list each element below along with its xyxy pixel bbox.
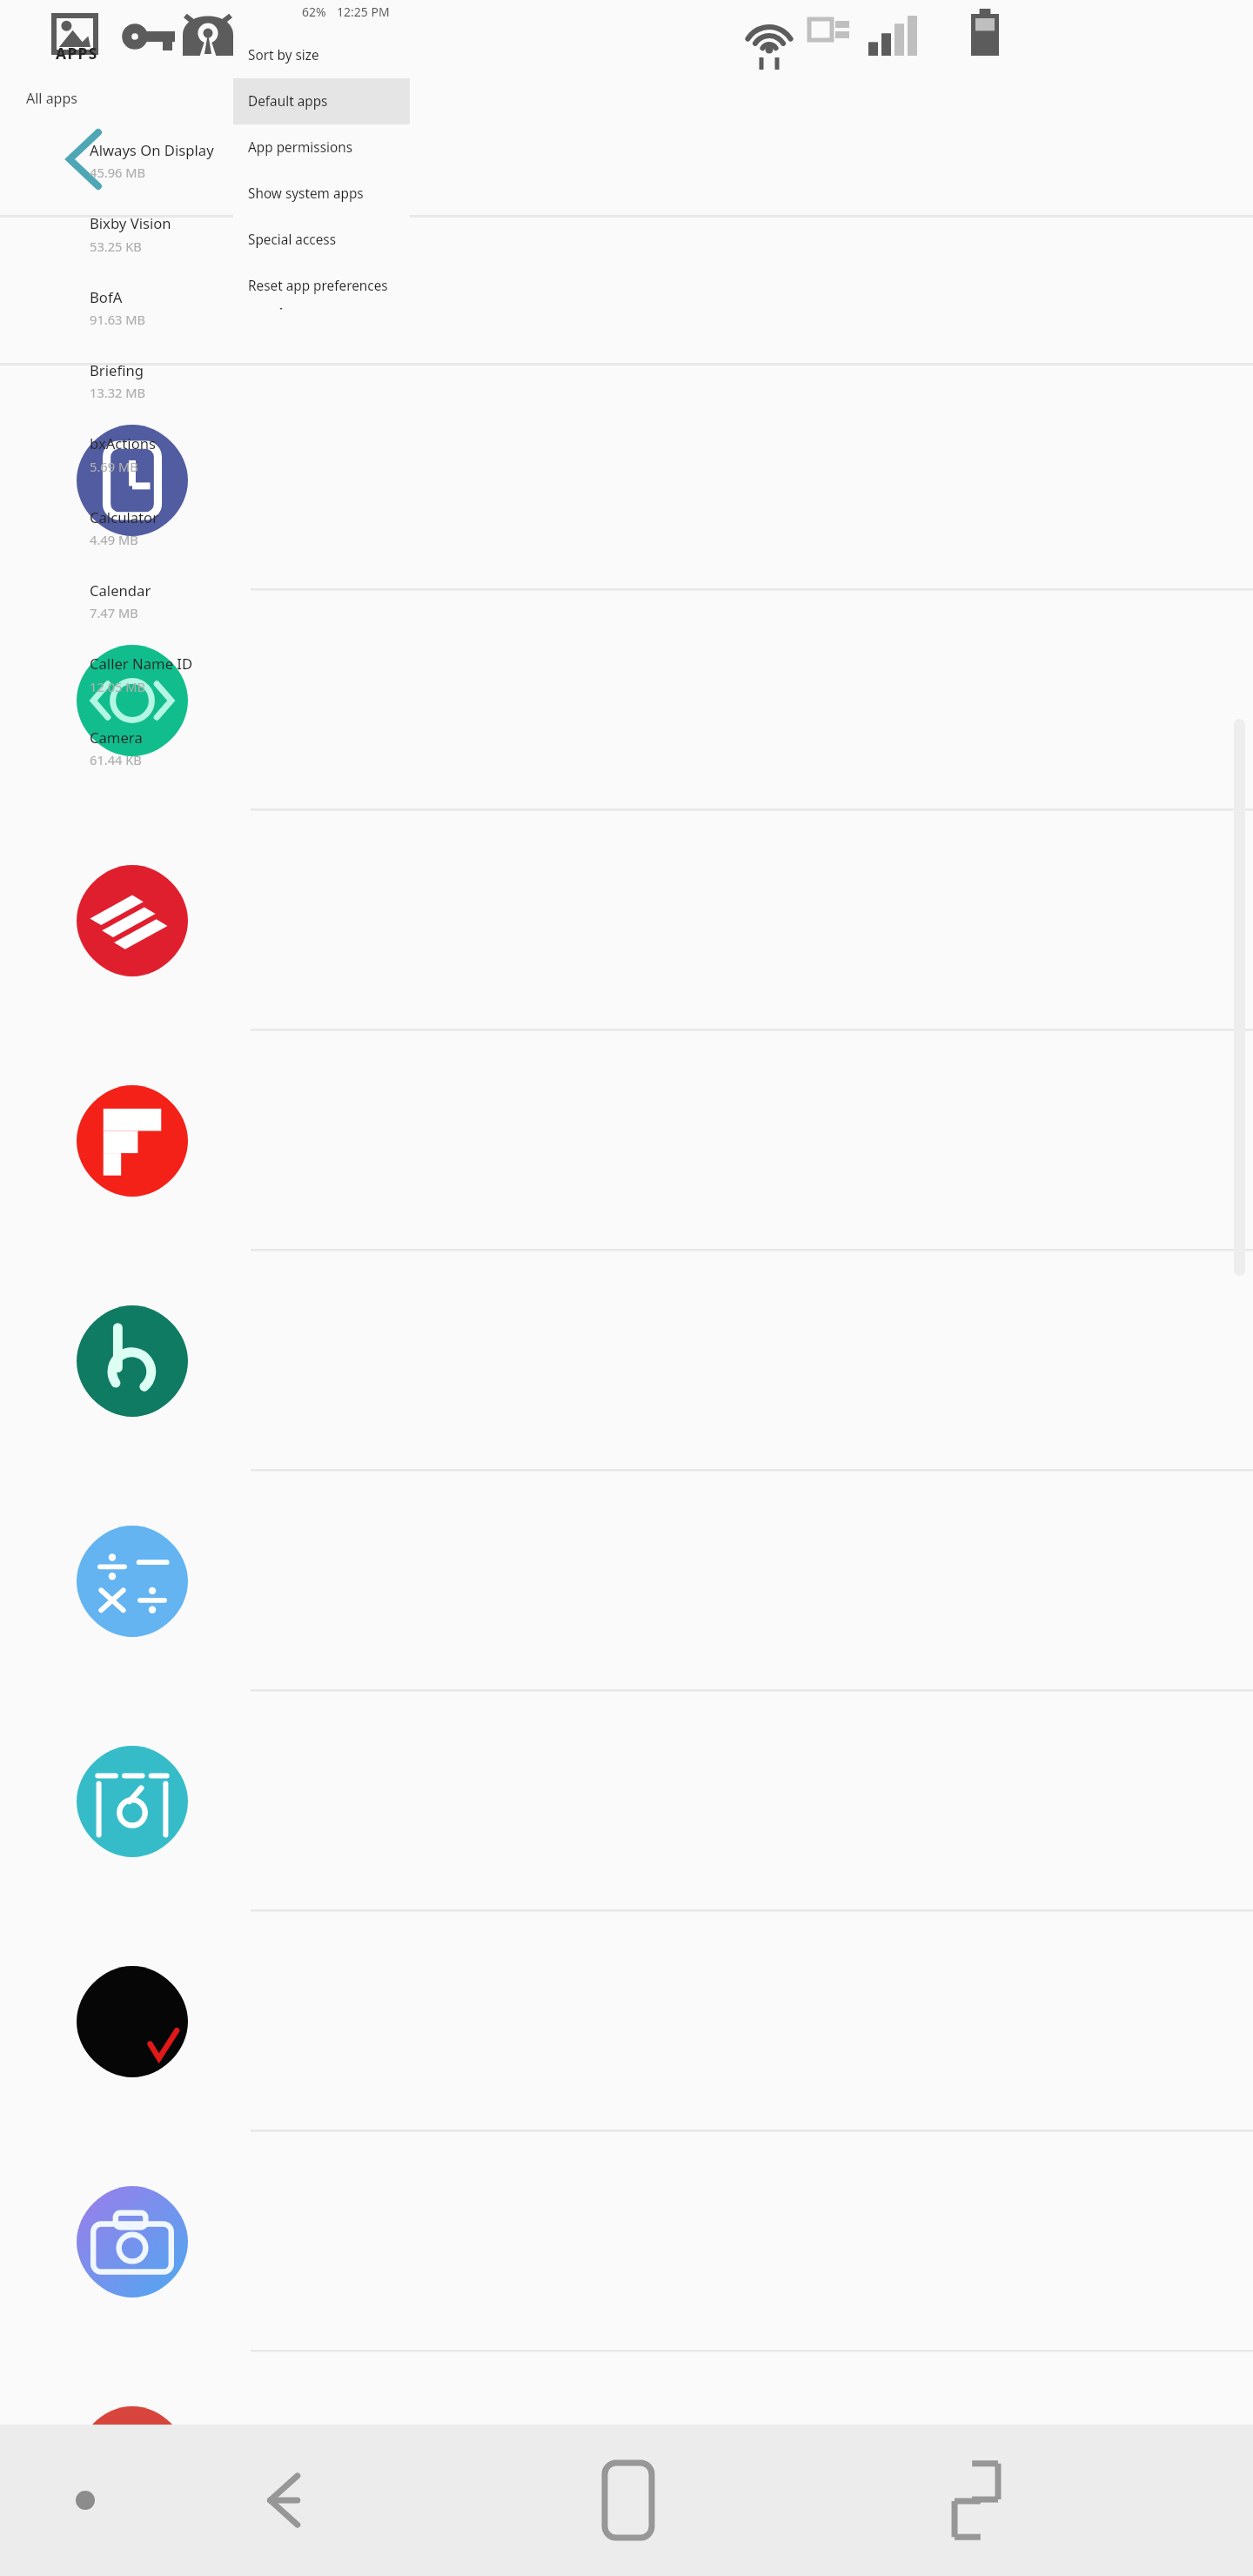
- staticText: 53.25 KB: [90, 238, 142, 255]
- button[interactable]: [0, 344, 418, 417]
- staticText: Default apps: [248, 92, 328, 111]
- button[interactable]: [0, 710, 418, 783]
- staticText: Calculator: [90, 507, 159, 527]
- button[interactable]: [0, 197, 418, 270]
- staticText: 4.49 MB: [90, 531, 138, 548]
- staticText: 5.69 MB: [90, 458, 138, 475]
- staticText: App permissions: [248, 138, 353, 157]
- button[interactable]: Default apps: [233, 78, 410, 124]
- button[interactable]: [0, 564, 418, 637]
- staticText: Show system apps: [248, 184, 364, 203]
- staticText: 12.05 MB: [90, 678, 146, 695]
- button[interactable]: App permissions: [233, 124, 410, 171]
- button[interactable]: Special access: [233, 217, 410, 263]
- staticText: 12:25 PM: [337, 3, 390, 20]
- staticText: APPS: [56, 43, 98, 64]
- button[interactable]: [0, 637, 418, 710]
- staticText: 62%: [302, 3, 326, 20]
- button[interactable]: [0, 270, 418, 343]
- staticText: 13.32 MB: [90, 384, 146, 401]
- staticText: 45.96 MB: [90, 164, 146, 181]
- staticText: 7.47 MB: [90, 604, 138, 621]
- button[interactable]: Sort by size: [233, 32, 410, 78]
- staticText: Bixby Vision: [90, 213, 171, 233]
- staticText: Caller Name ID: [90, 654, 193, 674]
- button[interactable]: Show system apps: [233, 171, 410, 217]
- staticText: All apps: [26, 89, 77, 108]
- staticText: bxActions: [90, 433, 157, 453]
- button[interactable]: Reset app preferences: [233, 263, 410, 308]
- staticText: Camera: [90, 728, 143, 748]
- staticText: Special access: [248, 231, 336, 249]
- staticText: Always On Display: [90, 140, 214, 160]
- staticText: 61.44 KB: [90, 751, 142, 768]
- staticText: Calendar: [90, 580, 151, 600]
- button[interactable]: [0, 72, 418, 120]
- staticText: BofA: [90, 287, 123, 307]
- staticText: Reset app preferences: [248, 277, 388, 295]
- staticText: Sort by size: [248, 46, 319, 64]
- button[interactable]: [0, 124, 418, 197]
- staticText: Briefing: [90, 360, 144, 380]
- button[interactable]: [0, 417, 418, 490]
- button[interactable]: [0, 490, 418, 563]
- staticText: 91.63 MB: [90, 311, 146, 328]
